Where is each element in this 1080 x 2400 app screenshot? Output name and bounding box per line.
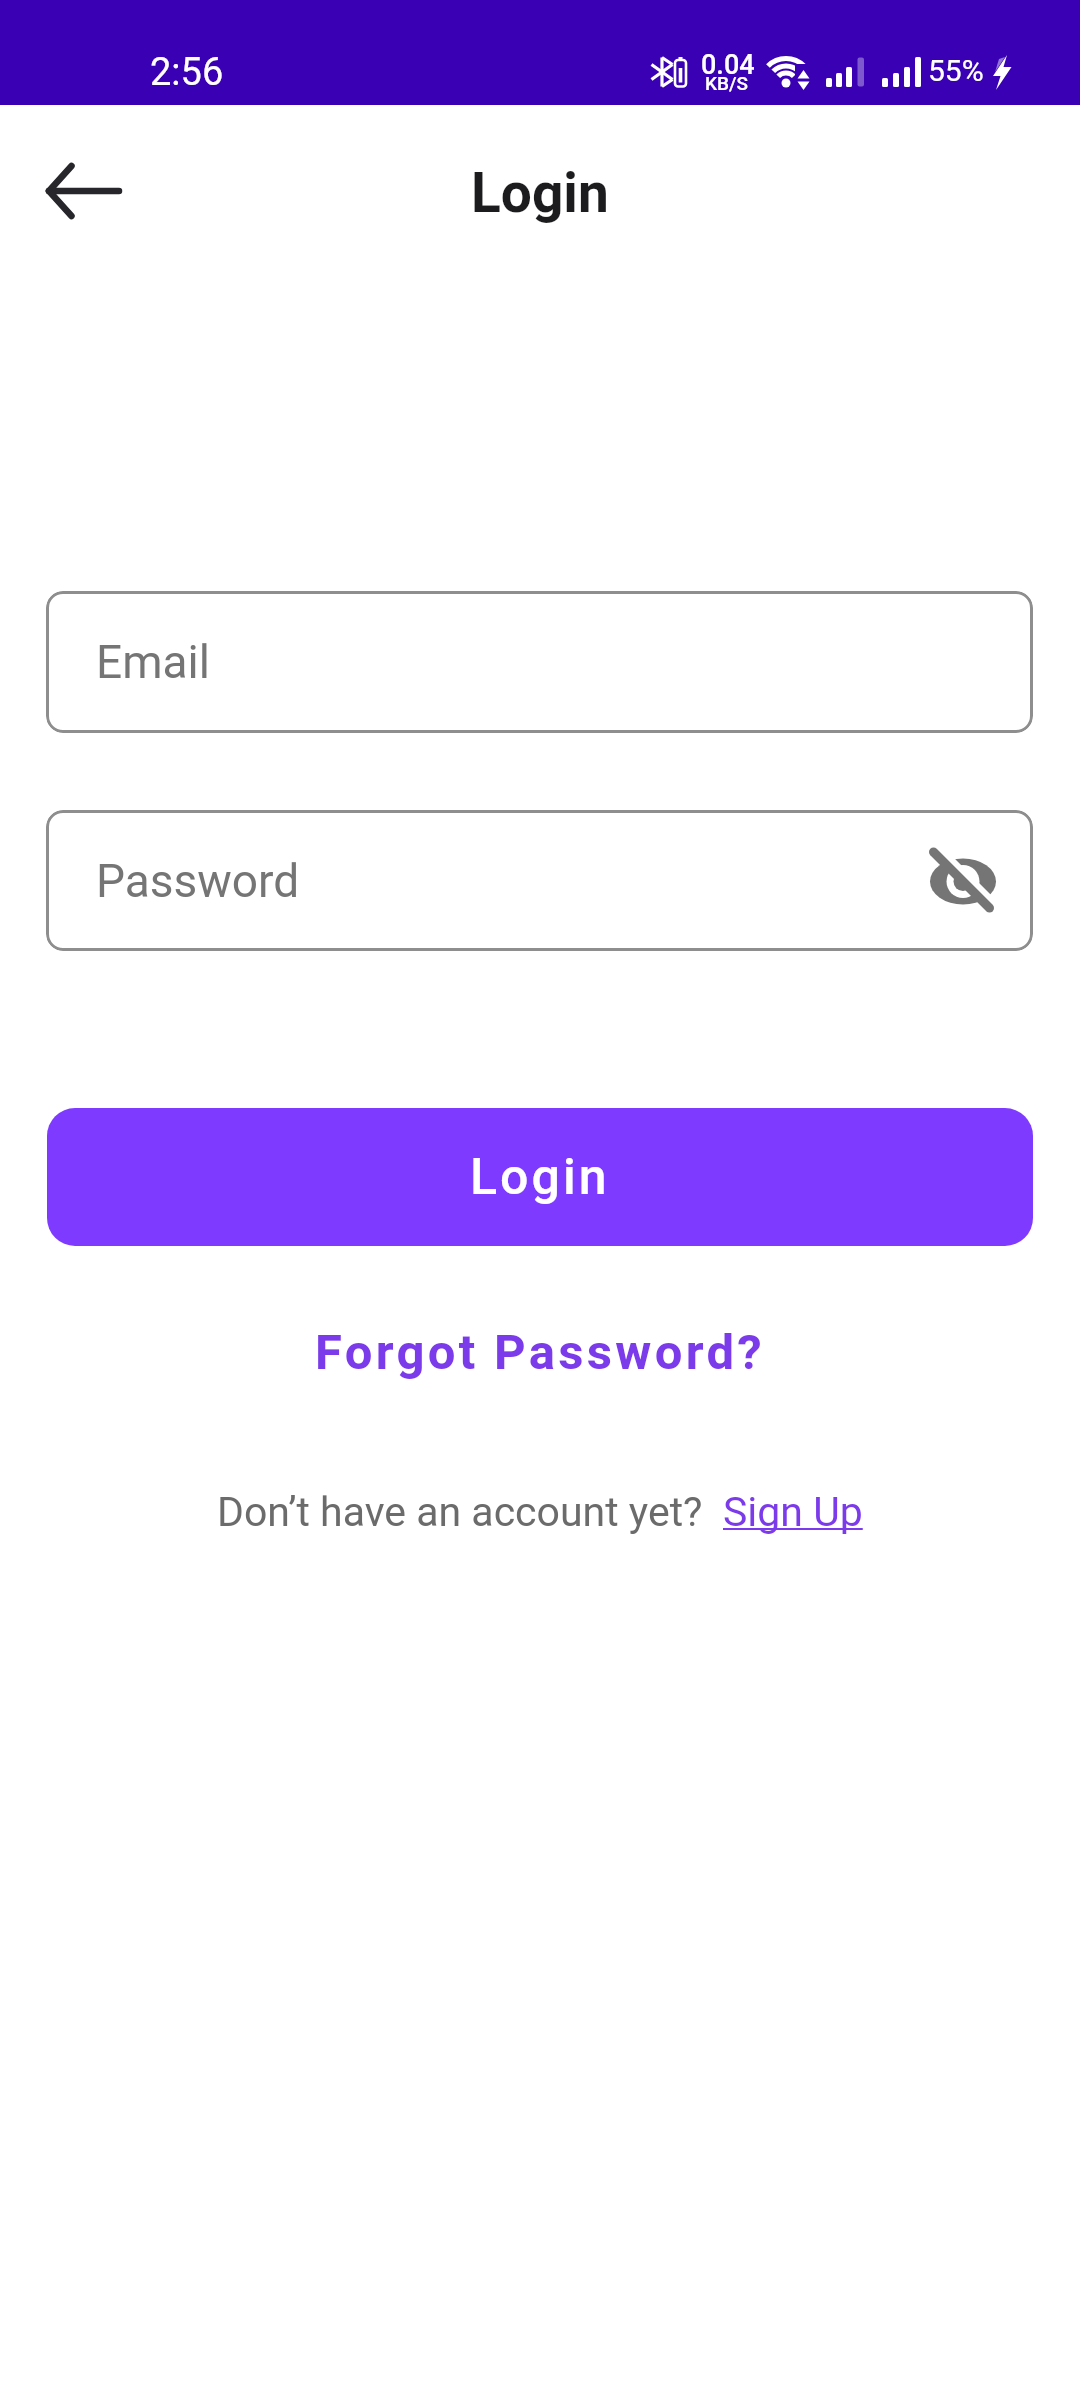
staticText: Forgot Password? (315, 1324, 766, 1381)
button[interactable]: Sign Up (723, 1488, 863, 1536)
button[interactable] (927, 845, 999, 917)
button[interactable]: Password (46, 810, 1033, 951)
staticText: KB/S (705, 72, 748, 94)
staticText: 0.04 (701, 49, 755, 81)
staticText: 2:56 (150, 50, 224, 95)
staticText: Login (470, 1148, 610, 1207)
button[interactable] (24, 131, 144, 251)
button[interactable]: Email (46, 591, 1033, 733)
button[interactable]: Login (47, 1108, 1033, 1246)
staticText: 55% (928, 53, 984, 88)
button[interactable]: Forgot Password? (315, 1324, 766, 1381)
staticText: Sign Up (723, 1488, 863, 1536)
staticText: Login (471, 161, 609, 225)
staticText: Don’t have an account yet? (217, 1488, 703, 1536)
staticText: Password (96, 854, 300, 908)
staticText: Email (96, 635, 210, 689)
